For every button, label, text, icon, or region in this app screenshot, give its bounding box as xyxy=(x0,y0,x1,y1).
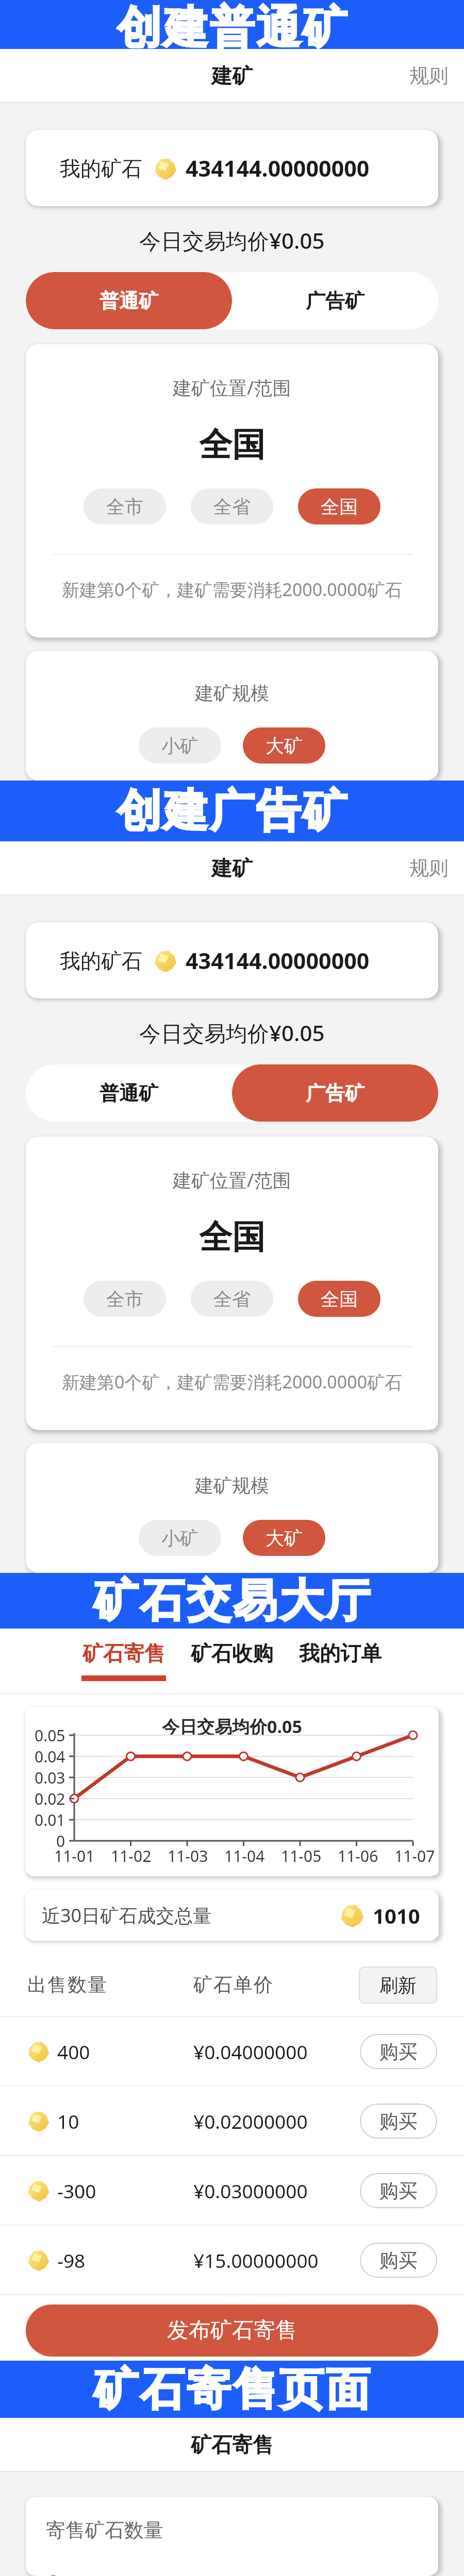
button[interactable]: 全省 xyxy=(191,488,273,524)
button[interactable]: 大矿 xyxy=(243,1520,325,1556)
staticText: -300 xyxy=(57,2178,96,2204)
staticText: ¥0.04000000 xyxy=(193,2039,360,2064)
staticText: 规则 xyxy=(409,856,449,880)
button[interactable]: 广告矿 xyxy=(232,1064,438,1122)
staticText: 10 xyxy=(57,2108,79,2134)
staticText: 新建第0个矿，建矿需要消耗2000.0000矿石 xyxy=(62,578,403,601)
staticText: 11-06 xyxy=(338,1845,378,1867)
button[interactable]: 矿石寄售 xyxy=(77,1640,170,1681)
staticText: ¥15.00000000 xyxy=(193,2247,360,2273)
staticText: 全国 xyxy=(199,424,265,466)
button[interactable]: 购买 xyxy=(360,2034,437,2069)
staticText: 11-05 xyxy=(281,1845,322,1867)
staticText: 建矿位置/范围 xyxy=(173,375,291,400)
button[interactable]: 普通矿 xyxy=(26,1064,232,1122)
staticText: 寄售矿石数量 xyxy=(46,2518,163,2543)
staticText: 0 xyxy=(56,1831,65,1852)
staticText: 新建第0个矿，建矿需要消耗2000.0000矿石 xyxy=(62,1370,403,1394)
button[interactable]: 全国 xyxy=(298,488,380,524)
staticText: 普通矿 xyxy=(100,289,158,313)
button[interactable]: 我的矿石 xyxy=(26,130,438,206)
button[interactable]: 规则 xyxy=(394,845,464,891)
staticText: 全市 xyxy=(106,495,143,518)
button[interactable]: 购买 xyxy=(360,2243,437,2278)
staticText: 1010 xyxy=(373,1902,420,1929)
staticText: 今日交易均价¥0.05 xyxy=(139,226,325,253)
staticText: 全国 xyxy=(321,495,358,518)
button[interactable]: 小矿 xyxy=(139,1520,221,1556)
staticText: 0.03 xyxy=(35,1767,65,1788)
staticText: 购买 xyxy=(379,2248,418,2273)
staticText: 小矿 xyxy=(161,1527,198,1550)
button[interactable]: 购买 xyxy=(360,2173,437,2208)
staticText: 建矿规模 xyxy=(195,1474,269,1497)
staticText: 购买 xyxy=(379,2179,418,2203)
staticText: 普通矿 xyxy=(100,1081,158,1106)
staticText: 创建普通矿 xyxy=(116,0,348,49)
staticText: ¥0.02000000 xyxy=(193,2108,360,2134)
staticText: 建矿规模 xyxy=(195,682,269,705)
staticText: 我的矿石 xyxy=(60,156,142,181)
staticText: 广告矿 xyxy=(306,289,364,313)
staticText: 0.02 xyxy=(35,1788,65,1809)
button[interactable]: 全省 xyxy=(191,1281,273,1317)
staticText: 11-07 xyxy=(394,1845,435,1867)
staticText: 小矿 xyxy=(161,734,198,757)
button[interactable]: 我的矿石 xyxy=(26,922,438,998)
staticText: 全市 xyxy=(106,1287,143,1311)
button[interactable]: 我的订单 xyxy=(294,1640,387,1681)
staticText: 0 xyxy=(41,2561,65,2576)
button[interactable]: 规则 xyxy=(394,53,464,98)
staticText: 大矿 xyxy=(266,734,303,757)
staticText: 11-04 xyxy=(224,1845,265,1867)
staticText: 大矿 xyxy=(266,1527,303,1550)
button[interactable]: 大矿 xyxy=(243,727,325,764)
button[interactable]: -300 xyxy=(0,2156,464,2225)
staticText: 创建广告矿 xyxy=(116,783,348,839)
staticText: 刷新 xyxy=(379,1974,417,1997)
staticText: 规则 xyxy=(409,63,449,88)
button[interactable]: 购买 xyxy=(360,2104,437,2139)
button[interactable]: 10 xyxy=(0,2087,464,2155)
staticText: 矿石寄售页面 xyxy=(93,2362,371,2417)
staticText: 400 xyxy=(57,2039,90,2064)
button[interactable]: 矿石收购 xyxy=(186,1640,278,1681)
button[interactable]: 全市 xyxy=(84,1281,166,1317)
staticText: 11-03 xyxy=(168,1845,208,1867)
staticText: 我的矿石 xyxy=(60,948,142,974)
staticText: 矿石交易大厅 xyxy=(93,1573,371,1629)
button[interactable]: 广告矿 xyxy=(232,272,438,329)
staticText: 全国 xyxy=(199,1216,265,1258)
button[interactable]: 普通矿 xyxy=(26,272,232,329)
staticText: 矿石单价 xyxy=(193,1973,359,1997)
staticText: 0.01 xyxy=(35,1809,65,1831)
staticText: 购买 xyxy=(379,2040,418,2064)
staticText: 广告矿 xyxy=(306,1081,364,1106)
staticText: 全省 xyxy=(213,495,251,518)
button[interactable]: 发布矿石寄售 xyxy=(26,2304,438,2357)
button[interactable]: 刷新 xyxy=(359,1967,437,2004)
button[interactable]: 近30日矿石成交总量 xyxy=(25,1890,439,1941)
button[interactable]: -98 xyxy=(0,2226,464,2294)
button[interactable]: 全国 xyxy=(298,1281,380,1317)
staticText: 11-01 xyxy=(54,1845,95,1867)
staticText: 434144.00000000 xyxy=(186,153,370,183)
staticText: 建矿位置/范围 xyxy=(173,1167,291,1193)
staticText: 矿石收购 xyxy=(191,1640,273,1666)
button[interactable]: 全市 xyxy=(84,488,166,524)
staticText: ¥0.03000000 xyxy=(193,2178,360,2204)
button[interactable]: 400 xyxy=(0,2017,464,2086)
button[interactable]: 小矿 xyxy=(139,727,221,764)
staticText: 11-02 xyxy=(111,1845,152,1867)
staticText: 出售数量 xyxy=(27,1973,193,1997)
staticText: 434144.00000000 xyxy=(186,945,370,976)
staticText: 矿石寄售 xyxy=(82,1640,165,1666)
staticText: 发布矿石寄售 xyxy=(167,2317,297,2344)
staticText: 今日交易均价0.05 xyxy=(162,1715,302,1738)
staticText: 我的订单 xyxy=(299,1640,382,1666)
staticText: 近30日矿石成交总量 xyxy=(42,1903,212,1928)
staticText: 建矿 xyxy=(211,855,253,881)
staticText: 0.04 xyxy=(35,1746,65,1767)
staticText: 今日交易均价¥0.05 xyxy=(139,1018,325,1046)
staticText: 矿石寄售 xyxy=(191,2432,273,2458)
